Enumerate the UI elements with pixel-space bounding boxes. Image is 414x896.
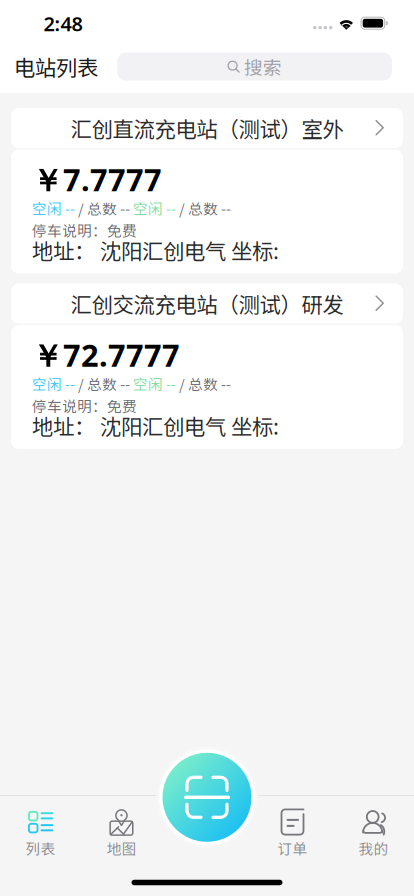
staticText: 汇创交流充电站（测试）研发 — [70, 288, 343, 319]
button[interactable]: 我的 — [333, 796, 414, 862]
staticText: 搜索 — [244, 53, 282, 80]
staticText: 空闲 -- — [133, 373, 179, 394]
button[interactable]: 扫一扫 — [156, 747, 257, 848]
staticText: 我的 — [358, 837, 388, 859]
staticText: 空闲 -- — [133, 197, 179, 219]
button[interactable]: 订单 — [252, 796, 333, 862]
button[interactable]: 汇创直流充电站（测试）室外 — [11, 108, 403, 148]
staticText: / 总数 -- — [179, 197, 231, 219]
button[interactable]: 列表 — [0, 796, 81, 862]
staticText: 列表 — [25, 837, 55, 859]
staticText: 地址： 沈阳汇创电气 坐标: — [32, 235, 279, 265]
staticText: 停车说明：免费 — [32, 395, 137, 416]
staticText: 订单 — [277, 837, 307, 859]
staticText: 地图 — [106, 837, 136, 859]
staticText: / 总数 -- — [78, 373, 133, 394]
staticText: 停车说明：免费 — [32, 219, 137, 241]
staticText: ￥7.7777 — [32, 159, 162, 200]
staticText: 空闲 -- — [32, 373, 78, 394]
staticText: / 总数 -- — [78, 197, 133, 219]
staticText: 地址： 沈阳汇创电气 坐标: — [32, 410, 279, 441]
button[interactable]: 汇创交流充电站（测试）研发 — [11, 283, 403, 323]
staticText: 空闲 -- — [32, 197, 78, 219]
button[interactable]: 搜索 — [117, 53, 392, 81]
button[interactable]: 地图 — [81, 796, 162, 862]
staticText: 电站列表 — [14, 51, 98, 82]
staticText: 2:48 — [43, 10, 82, 37]
staticText: 汇创直流充电站（测试）室外 — [70, 113, 343, 143]
staticText: ￥72.7777 — [32, 335, 180, 375]
staticText: / 总数 -- — [179, 373, 231, 394]
